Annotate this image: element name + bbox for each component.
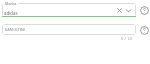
button[interactable]: Help <box>140 6 149 15</box>
button[interactable]: Open dropdown <box>124 6 133 15</box>
staticText: Marka <box>5 1 17 6</box>
staticText: 0 / 14 <box>121 36 132 42</box>
button[interactable] <box>2 3 136 17</box>
button[interactable]: Help <box>140 26 149 35</box>
staticText: EAN (GTIN) <box>5 27 26 32</box>
button[interactable] <box>2 24 136 35</box>
staticText: adidas <box>4 10 18 16</box>
button[interactable]: Clear <box>115 6 124 15</box>
